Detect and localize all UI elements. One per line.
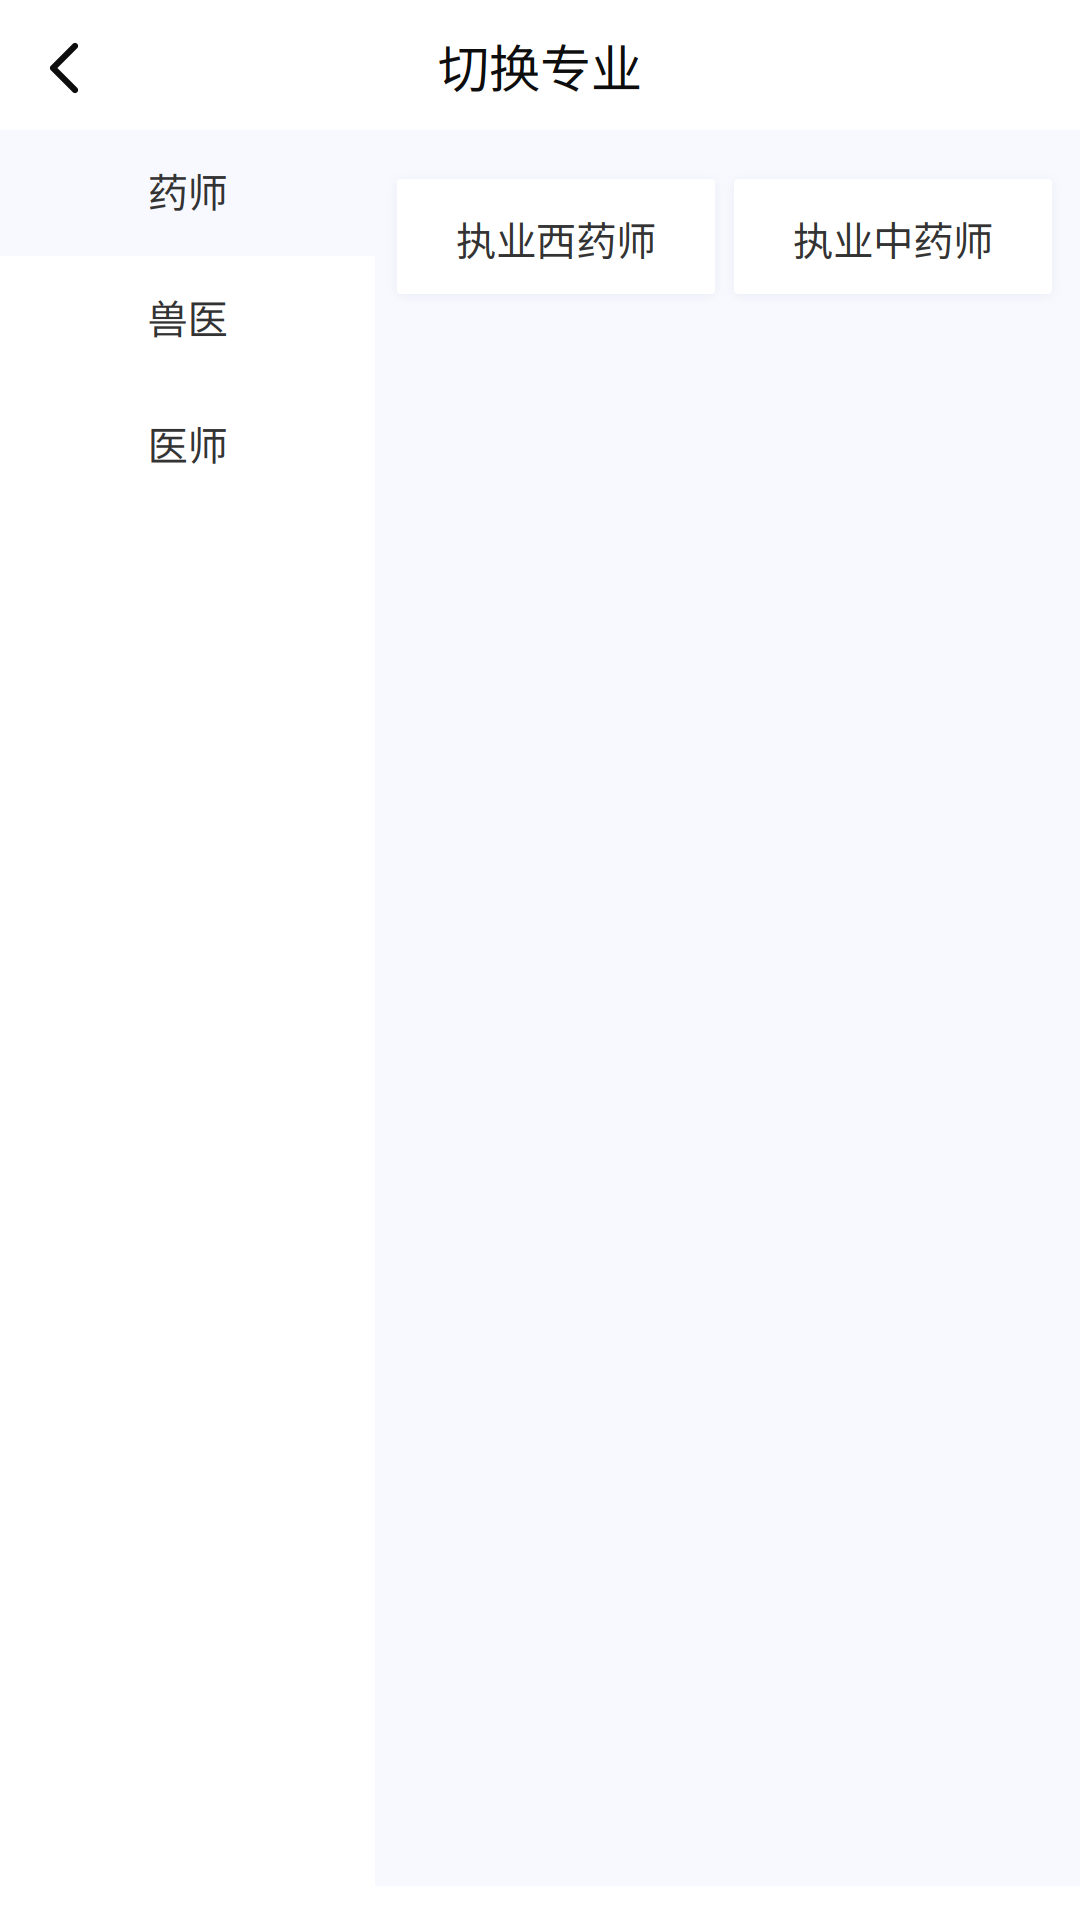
button[interactable]: 兽医	[0, 256, 375, 383]
staticText: 执业西药师	[456, 209, 656, 268]
staticText: 兽医	[147, 288, 227, 346]
button[interactable]: 药师	[0, 130, 375, 256]
staticText: 医师	[147, 414, 227, 472]
staticText: 药师	[147, 161, 227, 219]
staticText: 执业中药师	[793, 209, 993, 268]
staticText: 切换专业	[438, 28, 642, 102]
button[interactable]: 返回	[0, 0, 128, 130]
button[interactable]: 执业中药师	[734, 179, 1052, 294]
button[interactable]: 医师	[0, 383, 375, 509]
button[interactable]: 执业西药师	[397, 179, 715, 294]
